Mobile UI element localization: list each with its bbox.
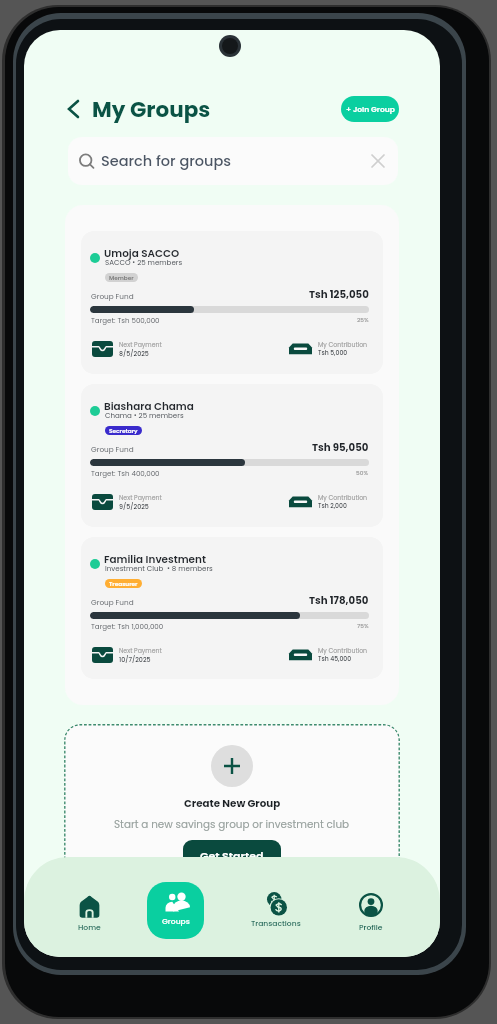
staticText: Biashara Chama [104, 399, 194, 414]
staticText: 50% [356, 469, 369, 477]
staticText: 9/5/2025 [119, 502, 149, 511]
staticText: 25% [357, 316, 369, 324]
staticText: Tsh 125,050 [309, 287, 369, 301]
button[interactable]: Create New Group [64, 724, 400, 889]
button[interactable]: Back [60, 96, 86, 122]
button[interactable]: Transactions [247, 892, 305, 929]
button[interactable]: Home [74, 894, 105, 933]
staticText: Chama • 25 members [105, 411, 184, 421]
staticText: Tsh 5,000 [318, 349, 348, 358]
staticText: Group Fund [91, 291, 134, 301]
staticText: Home [78, 922, 101, 933]
staticText: My Groups [92, 94, 211, 124]
staticText: Tsh 178,050 [309, 593, 369, 607]
button[interactable]: Umoja SACCO [81, 231, 383, 374]
staticText: My Contribution [318, 646, 368, 655]
staticText: + Join Group [346, 104, 395, 115]
staticText: Investment Club • 8 members [105, 564, 213, 574]
staticText: Tsh 95,050 [312, 440, 369, 454]
staticText: Familia Investment [104, 552, 206, 567]
staticText: Target: Tsh 400,000 [91, 469, 160, 479]
staticText: Next Payment [119, 646, 162, 655]
staticText: Profile [359, 922, 383, 933]
staticText: Get Started [200, 848, 264, 863]
staticText: Create New Group [184, 796, 281, 810]
staticText: Next Payment [119, 493, 162, 502]
staticText: Next Payment [119, 340, 162, 349]
button[interactable]: Clear search [371, 154, 385, 168]
staticText: Group Fund [91, 444, 134, 454]
staticText: Search for groups [101, 151, 232, 171]
staticText: 8/5/2025 [119, 349, 149, 358]
staticText: Tsh 2,000 [318, 502, 347, 511]
button[interactable]: Familia Investment [81, 537, 383, 679]
staticText: My Contribution [318, 340, 368, 349]
button[interactable]: Groups [147, 882, 204, 939]
staticText: 10/7/2025 [119, 655, 151, 664]
staticText: Start a new savings group or investment … [114, 817, 350, 832]
button[interactable]: Biashara Chama [81, 384, 383, 527]
staticText: Umoja SACCO [104, 246, 180, 261]
button[interactable]: Get Started [183, 840, 281, 870]
staticText: Member [109, 274, 134, 282]
staticText: My Contribution [318, 493, 368, 502]
button[interactable]: + Join Group [341, 96, 399, 122]
staticText: Target: Tsh 1,000,000 [91, 622, 164, 632]
staticText: Tsh 45,000 [318, 655, 352, 664]
staticText: Treasurer [109, 580, 138, 588]
staticText: Secretary [109, 427, 138, 435]
staticText: Transactions [251, 918, 301, 929]
button[interactable]: Profile [354, 892, 388, 933]
staticText: Target: Tsh 500,000 [91, 316, 160, 326]
staticText: Group Fund [91, 597, 134, 607]
staticText: Groups [162, 916, 190, 927]
button[interactable]: Search for groups [68, 137, 398, 185]
staticText: 75% [357, 622, 369, 630]
staticText: SACCO • 25 members [105, 258, 183, 268]
